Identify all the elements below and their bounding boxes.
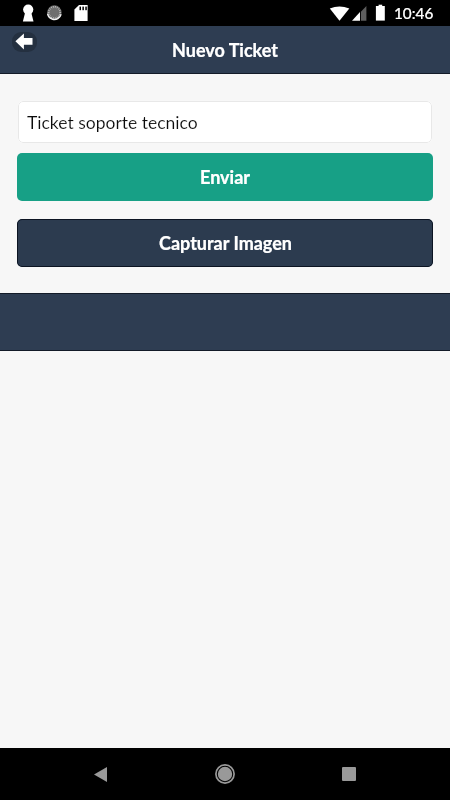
staticText: Capturar Imagen <box>159 232 292 254</box>
button[interactable]: Back <box>73 748 127 800</box>
staticText: Enviar <box>200 166 251 188</box>
staticText: Ticket soporte tecnico <box>27 112 198 133</box>
staticText: 10:46 <box>394 4 434 22</box>
button[interactable]: Recent apps <box>322 748 376 800</box>
button[interactable]: Enviar <box>17 153 433 201</box>
button[interactable]: Home <box>198 748 252 800</box>
button[interactable]: Capturar Imagen <box>17 219 433 267</box>
button[interactable]: Back <box>12 32 37 52</box>
button[interactable]: Ticket soporte tecnico <box>18 101 432 143</box>
staticText: Nuevo Ticket <box>172 39 278 61</box>
